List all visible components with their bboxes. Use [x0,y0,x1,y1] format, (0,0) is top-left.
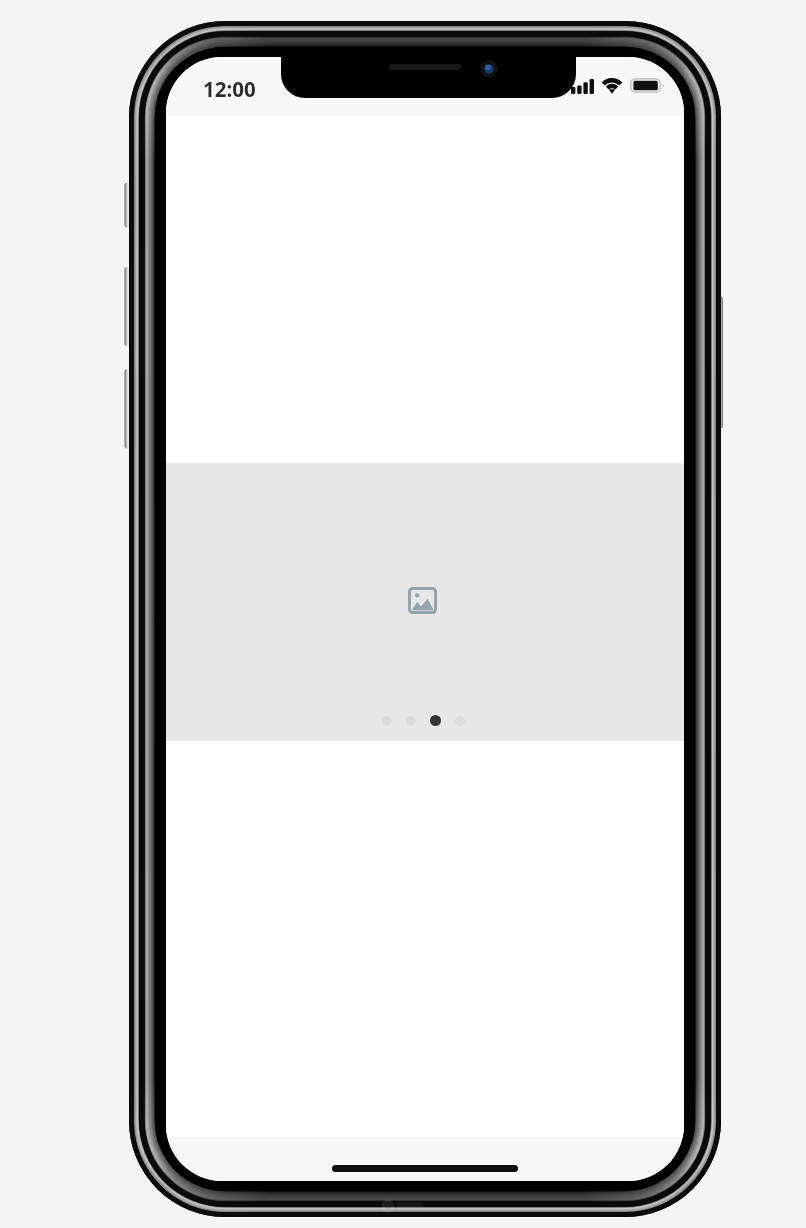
button[interactable]: Page 4 [455,716,465,726]
button[interactable]: Page 3 [430,715,441,726]
button[interactable]: Page 1 [382,716,392,726]
button[interactable]: Page 2 [406,716,416,726]
button[interactable]: Home indicator [332,1165,518,1172]
staticText: 12:00 [203,75,256,103]
